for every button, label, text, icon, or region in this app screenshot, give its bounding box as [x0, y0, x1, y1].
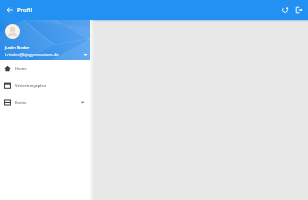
staticText: Profil [17, 6, 33, 14]
staticText: Home [15, 66, 27, 71]
staticText: l.rieder@kjsgymnasium.de [5, 51, 59, 57]
button[interactable]: Konto [0, 94, 90, 111]
button[interactable]: Back [4, 4, 16, 16]
button[interactable]: Vertretungsplan [0, 77, 90, 94]
button[interactable]: Home [0, 60, 90, 77]
button[interactable]: Refresh [278, 3, 292, 17]
staticText: Justin Rieder [5, 45, 30, 50]
button[interactable]: Logout [292, 3, 306, 17]
staticText: Konto [15, 100, 27, 105]
staticText: Vertretungsplan [15, 83, 47, 88]
